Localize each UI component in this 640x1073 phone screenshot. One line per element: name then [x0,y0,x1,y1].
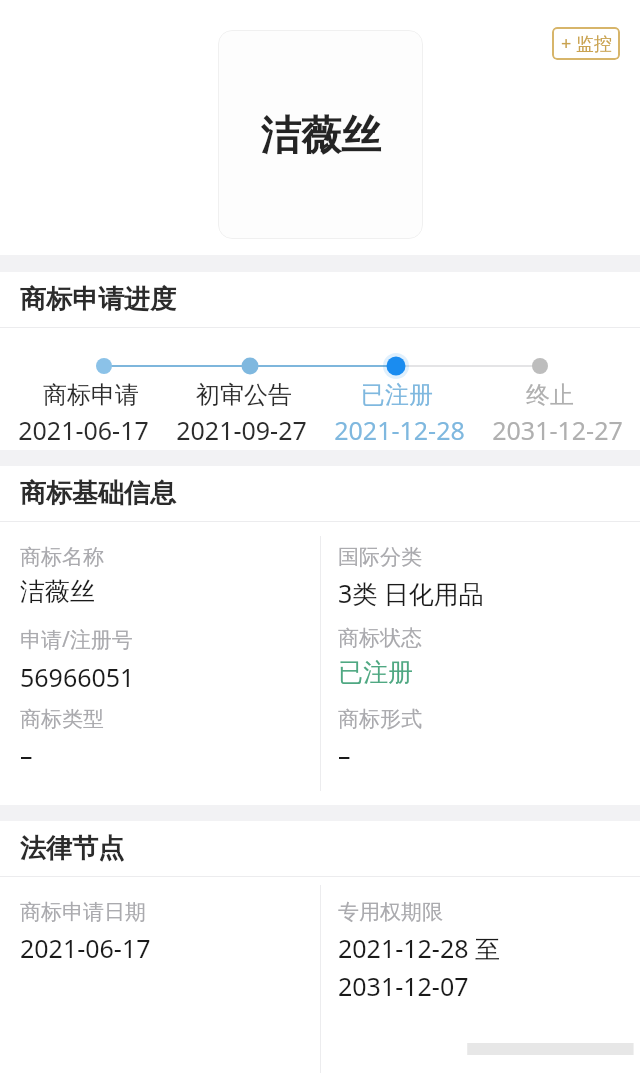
staticText: 商标基础信息 [20,477,176,510]
staticText: 国际分类 [338,544,422,570]
staticText: 商标名称 [20,544,104,570]
staticText: 2021-12-28 [334,413,465,447]
staticText: 2021-06-17 [20,931,151,965]
staticText: 2021-06-17 [18,413,149,447]
staticText: 专用权期限 [338,899,443,925]
staticText: 法律节点 [20,832,124,865]
staticText: 已注册 [338,657,413,688]
staticText: 商标申请 [43,380,139,410]
staticText: 申请/注册号 [20,625,133,654]
staticText: 2031-12-07 [338,969,469,1003]
staticText: 56966051 [20,660,135,694]
staticText: 2021-12-28 至 [338,931,501,965]
staticText: 商标类型 [20,706,104,732]
staticText: 初审公告 [196,380,292,410]
staticText: 终止 [526,380,574,410]
staticText: 商标形式 [338,706,422,732]
staticText: 商标状态 [338,625,422,651]
staticText: 2031-12-27 [492,413,623,447]
staticText: 洁薇丝 [261,110,381,160]
staticText: 商标申请进度 [20,283,176,316]
staticText: – [338,738,351,772]
button[interactable]: 洁薇丝 [218,30,423,239]
staticText: + 监控 [561,31,612,56]
staticText: 商标申请日期 [20,899,146,925]
staticText: 3类 日化用品 [338,576,484,610]
staticText: 已注册 [361,380,433,410]
staticText: 洁薇丝 [20,576,95,607]
staticText: – [20,738,33,772]
staticText: 2021-09-27 [176,413,307,447]
button[interactable]: 添加监控 [552,27,620,60]
